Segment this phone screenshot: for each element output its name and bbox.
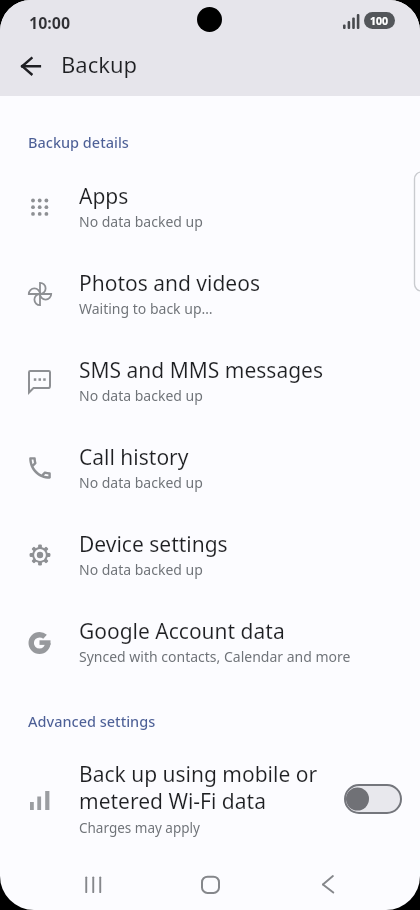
button[interactable]: [0, 164, 420, 251]
button[interactable]: [0, 599, 420, 686]
button[interactable]: [14, 51, 54, 83]
staticText: Google Account data: [79, 617, 285, 646]
staticText: Advanced settings: [28, 711, 156, 731]
staticText: Photos and videos: [79, 269, 260, 298]
button[interactable]: [70, 865, 120, 905]
staticText: No data backed up: [79, 386, 203, 405]
staticText: SMS and MMS messages: [79, 356, 323, 385]
staticText: Waiting to back up…: [79, 299, 213, 318]
staticText: metered Wi-Fi data: [79, 787, 266, 816]
staticText: 10:00: [29, 12, 71, 34]
staticText: No data backed up: [79, 212, 203, 231]
button[interactable]: [0, 752, 420, 848]
staticText: No data backed up: [79, 560, 203, 579]
staticText: No data backed up: [79, 473, 203, 492]
staticText: Synced with contacts, Calendar and more: [79, 647, 351, 666]
staticText: Backup details: [28, 132, 129, 152]
button[interactable]: [305, 865, 355, 905]
staticText: Backup: [61, 49, 138, 79]
button[interactable]: [0, 251, 420, 338]
button[interactable]: [344, 784, 402, 814]
button[interactable]: [0, 512, 420, 599]
staticText: Apps: [79, 182, 129, 211]
button[interactable]: [0, 425, 420, 512]
button[interactable]: [185, 865, 235, 905]
staticText: Back up using mobile or: [79, 760, 318, 789]
staticText: Call history: [79, 443, 189, 472]
staticText: Device settings: [79, 530, 228, 559]
staticText: Charges may apply: [79, 819, 200, 837]
button[interactable]: [0, 338, 420, 425]
staticText: 100: [370, 14, 389, 28]
